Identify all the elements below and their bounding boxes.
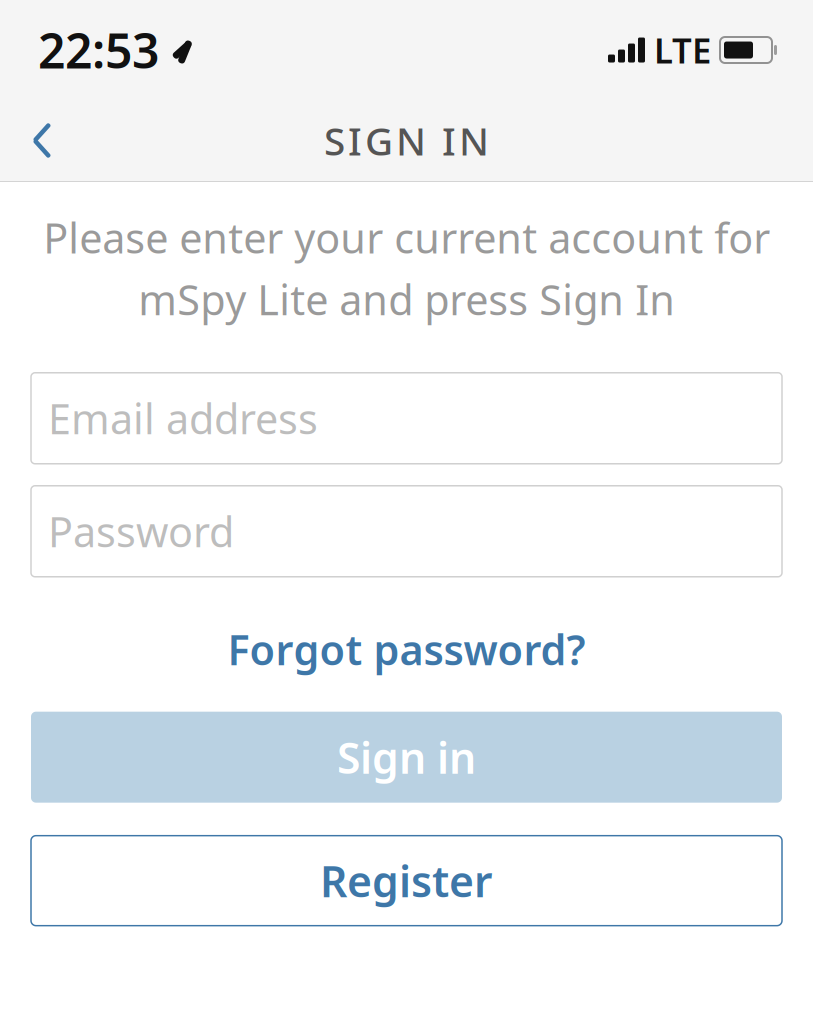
- button[interactable]: Back: [0, 100, 84, 181]
- staticText: Sign in: [337, 729, 476, 785]
- staticText: Forgot password?: [227, 622, 585, 677]
- staticText: Please enter your current account for mS…: [43, 210, 770, 327]
- button[interactable]: Sign in: [31, 712, 782, 803]
- staticText: Email address: [48, 391, 318, 446]
- button[interactable]: Register: [31, 836, 782, 926]
- staticText: SIGN IN: [324, 115, 489, 166]
- staticText: 22:53: [38, 18, 159, 82]
- button[interactable]: Forgot password?: [31, 606, 782, 693]
- staticText: Register: [320, 852, 493, 909]
- staticText: Password: [48, 504, 234, 559]
- staticText: LTE: [654, 27, 711, 73]
